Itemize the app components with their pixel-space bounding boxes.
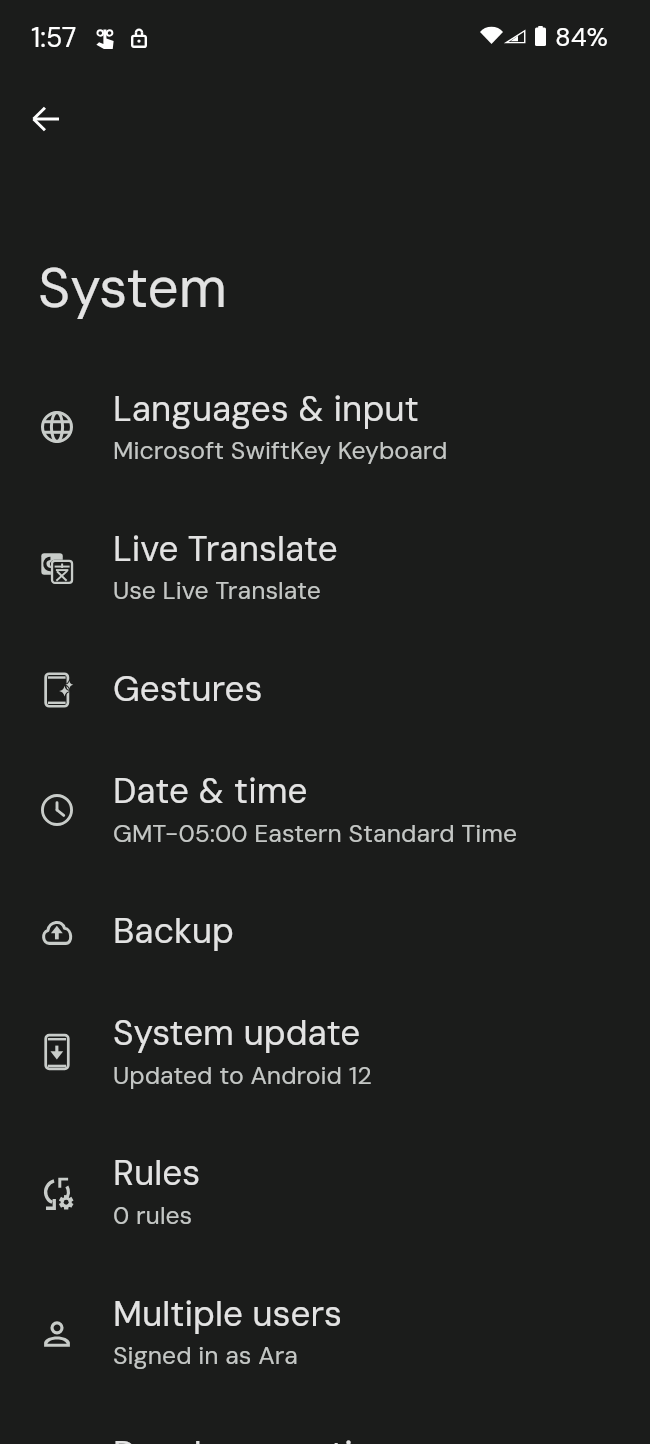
button[interactable]: Back <box>12 86 78 152</box>
staticText: 0 rules <box>113 1199 193 1231</box>
staticText: Backup <box>113 908 234 954</box>
staticText: Rules <box>113 1150 201 1196</box>
staticText: Updated to Android 12 <box>113 1059 372 1091</box>
staticText: Use Live Translate <box>113 574 321 606</box>
staticText: Microsoft SwiftKey Keyboard <box>113 434 448 466</box>
button[interactable]: Languages & input <box>0 372 650 512</box>
staticText: Date & time <box>113 768 308 814</box>
staticText: 1:57 <box>31 20 77 55</box>
staticText: System update <box>113 1010 361 1056</box>
staticText: Languages & input <box>113 386 419 432</box>
staticText: GMT-05:00 Eastern Standard Time <box>113 817 518 849</box>
staticText: Live Translate <box>113 526 338 572</box>
staticText: 84% <box>555 20 608 54</box>
staticText: Signed in as Ara <box>113 1339 298 1371</box>
button[interactable]: Rules <box>0 1137 650 1277</box>
staticText: Developer options <box>113 1431 412 1444</box>
button[interactable]: Gestures <box>0 652 650 754</box>
staticText: System <box>38 252 228 324</box>
button[interactable]: Backup <box>0 894 650 996</box>
staticText: Multiple users <box>113 1291 343 1337</box>
button[interactable]: Live Translate <box>0 512 650 652</box>
button[interactable]: Date & time <box>0 754 650 894</box>
button[interactable]: System update <box>0 996 650 1137</box>
staticText: Gestures <box>113 666 263 712</box>
button[interactable]: Multiple users <box>0 1277 650 1417</box>
button[interactable]: Developer options <box>0 1417 650 1444</box>
